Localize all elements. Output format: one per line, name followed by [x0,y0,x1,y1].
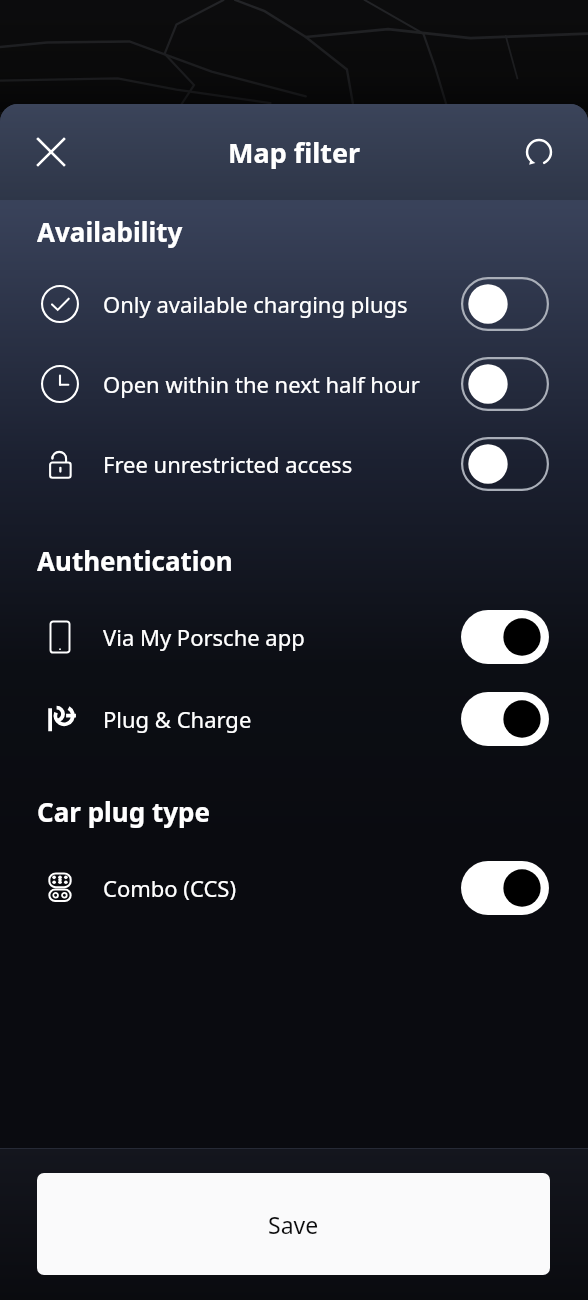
staticText: Open within the next half hour [103,369,447,399]
staticText: Car plug type [37,794,211,829]
button[interactable]: Toggle off [461,437,549,491]
staticText: Authentication [37,543,233,578]
button[interactable]: Toggle off [461,277,549,331]
button[interactable]: Plug & Charge [0,692,588,746]
button[interactable]: Free unrestricted access [0,437,588,491]
staticText: Combo (CCS) [103,873,447,903]
button[interactable]: Toggle off [461,357,549,411]
staticText: Only available charging plugs [103,289,447,319]
staticText: Map filter [228,134,361,171]
button[interactable]: Only available charging plugs [0,277,588,331]
staticText: Availability [37,214,183,249]
staticText: Free unrestricted access [103,449,447,479]
staticText: Save [268,1209,319,1240]
button[interactable]: Via My Porsche app [0,610,588,664]
button[interactable]: Toggle on [461,692,549,746]
staticText: Via My Porsche app [103,622,447,652]
button[interactable]: Toggle on [461,861,549,915]
button[interactable]: Reset filters [510,123,568,181]
button[interactable]: Close [22,123,80,181]
staticText: Plug & Charge [103,704,447,734]
button[interactable]: Save [37,1173,550,1275]
button[interactable]: Open within the next half hour [0,357,588,411]
button[interactable]: Toggle on [461,610,549,664]
button[interactable]: Combo (CCS) [0,861,588,915]
